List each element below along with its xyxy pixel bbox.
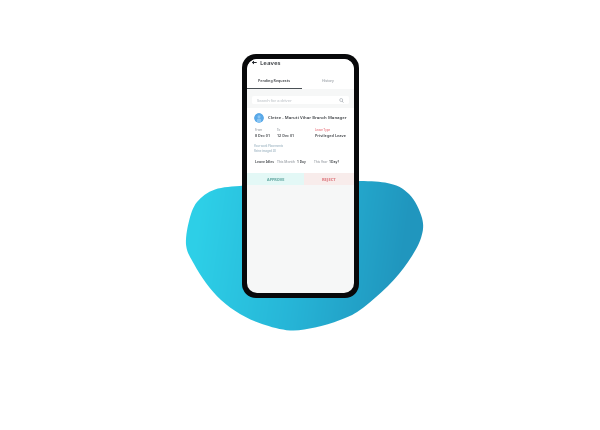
button[interactable]: REJECT: [304, 173, 354, 185]
staticText: Privileged Leave: [315, 133, 347, 138]
staticText: From: [255, 128, 263, 132]
staticText: 12 Dec 01: [277, 133, 295, 138]
staticText: Pending Requests: [258, 78, 291, 83]
staticText: History: [322, 78, 334, 83]
staticText: This Year: [314, 160, 328, 164]
staticText: Reine imaged 20: [254, 149, 276, 153]
staticText: Leave Type: [315, 128, 331, 132]
staticText: APPROVE: [267, 177, 285, 182]
staticText: Your work Placements: [254, 144, 284, 148]
other: Back: [252, 60, 257, 65]
other: Search: [339, 98, 344, 103]
staticText: 1 Day: [297, 160, 306, 164]
staticText: Leave Idles: [255, 159, 274, 164]
button[interactable]: Back: [252, 59, 281, 66]
button[interactable]: History: [301, 77, 354, 84]
staticText: Cletee - Maruti Vihar Branch Manager: [268, 115, 347, 121]
staticText: To: [277, 128, 281, 132]
staticText: REJECT: [322, 177, 336, 182]
button[interactable]: Pending Requests: [247, 77, 301, 84]
button[interactable]: APPROVE: [247, 173, 304, 185]
button[interactable]: Search for a driver: [252, 96, 349, 104]
staticText: Leaves: [260, 59, 281, 66]
staticText: 1Day?: [329, 159, 340, 164]
staticText: Search for a driver: [257, 98, 292, 103]
staticText: 8 Dec 01: [255, 133, 271, 138]
button[interactable]: Cletee - Maruti Vihar Branch Manager: [254, 113, 347, 123]
staticText: This Month: [277, 159, 295, 164]
